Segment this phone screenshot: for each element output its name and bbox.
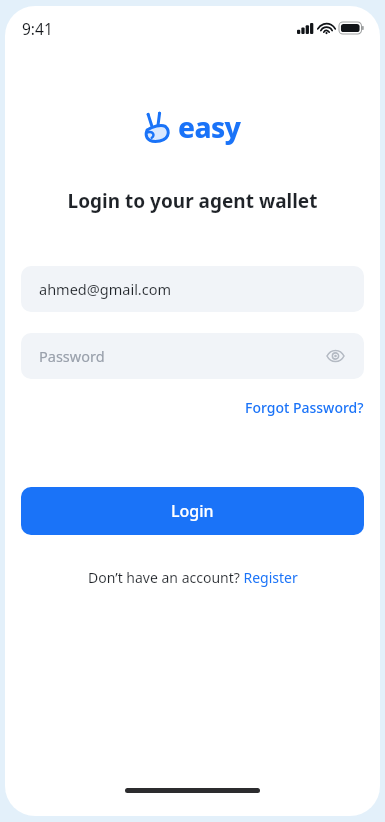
- button[interactable]: Don’t have an account? Register: [84, 564, 302, 591]
- staticText: Login: [171, 500, 214, 522]
- staticText: Login to your agent wallet: [5, 188, 380, 214]
- staticText: Don’t have an account? Register: [88, 568, 298, 587]
- button[interactable]: Login: [21, 487, 364, 535]
- other: easy logo: [145, 112, 171, 142]
- staticText: 9:41: [22, 18, 53, 39]
- button[interactable]: ahmed@gmail.com: [21, 266, 364, 312]
- button[interactable]: Forgot Password?: [245, 396, 364, 419]
- staticText: Forgot Password?: [245, 398, 364, 417]
- staticText: ahmed@gmail.com: [39, 279, 172, 299]
- staticText: Password: [39, 346, 105, 366]
- button[interactable]: Show password: [324, 345, 346, 367]
- button[interactable]: Password: [21, 333, 364, 379]
- staticText: easy: [178, 108, 241, 146]
